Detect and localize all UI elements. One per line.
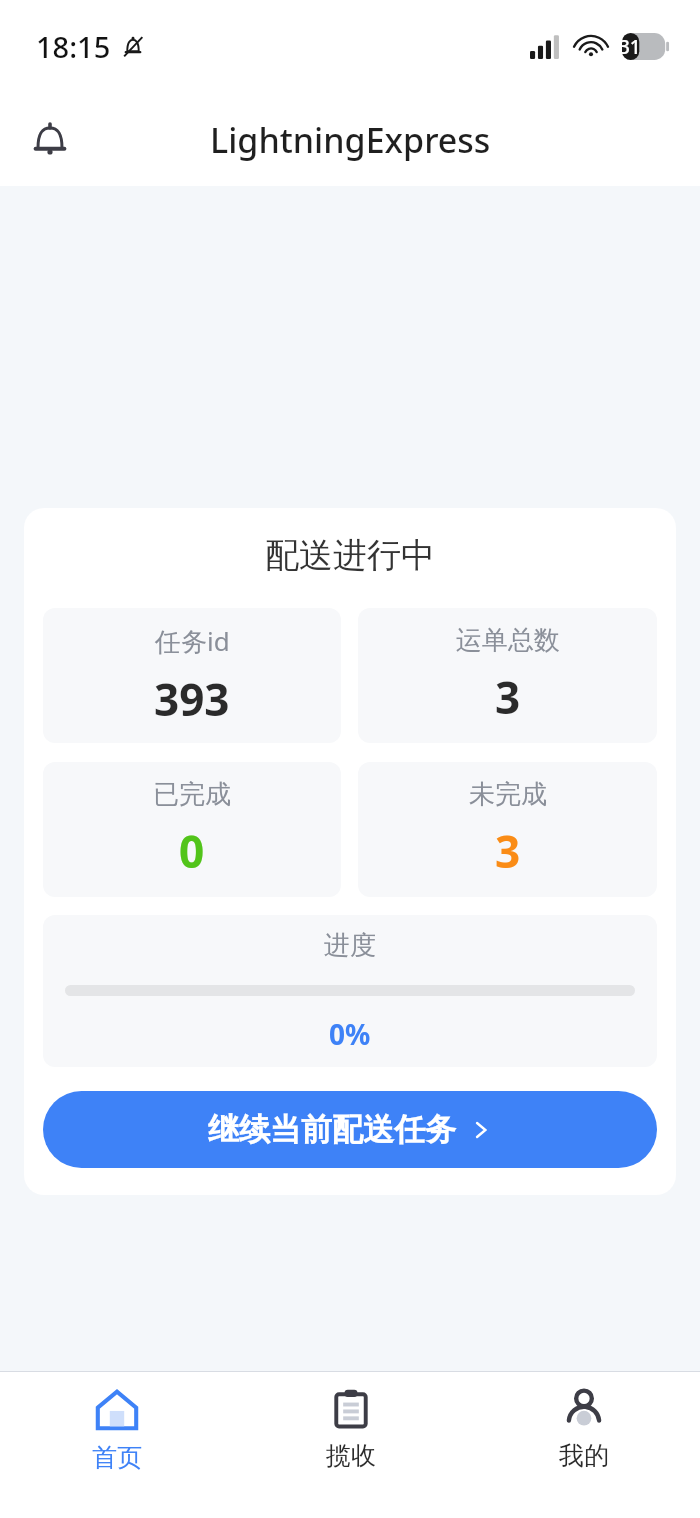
staticText: 任务id [155, 623, 230, 659]
staticText: 0 [179, 821, 205, 881]
button[interactable]: 未完成 [358, 762, 657, 897]
staticText: 揽收 [326, 1440, 376, 1471]
staticText: 进度 [324, 929, 376, 962]
staticText: 0% [329, 1015, 371, 1053]
button[interactable]: 任务id [43, 608, 341, 743]
staticText: 未完成 [469, 778, 547, 811]
button[interactable]: 继续当前配送任务 [43, 1091, 657, 1168]
button[interactable]: 运单总数 [358, 608, 657, 743]
staticText: 393 [154, 669, 230, 729]
staticText: 继续当前配送任务 [208, 1110, 456, 1149]
staticText: 已完成 [153, 778, 231, 811]
button[interactable]: 我的 [467, 1372, 700, 1471]
staticText: 3 [495, 667, 521, 727]
button[interactable]: 已完成 [43, 762, 341, 897]
staticText: 31 [619, 34, 641, 60]
button[interactable]: 揽收 [234, 1372, 467, 1471]
staticText: 首页 [92, 1442, 142, 1473]
button[interactable]: Notifications [18, 108, 82, 172]
staticText: LightningExpress [210, 117, 491, 163]
staticText: 我的 [559, 1440, 609, 1471]
button[interactable]: 进度 [43, 915, 657, 1067]
staticText: 运单总数 [456, 624, 560, 657]
staticText: 18:15 [36, 27, 111, 66]
staticText: 3 [495, 821, 521, 881]
button[interactable]: 首页 [0, 1372, 234, 1473]
staticText: 配送进行中 [43, 534, 657, 577]
